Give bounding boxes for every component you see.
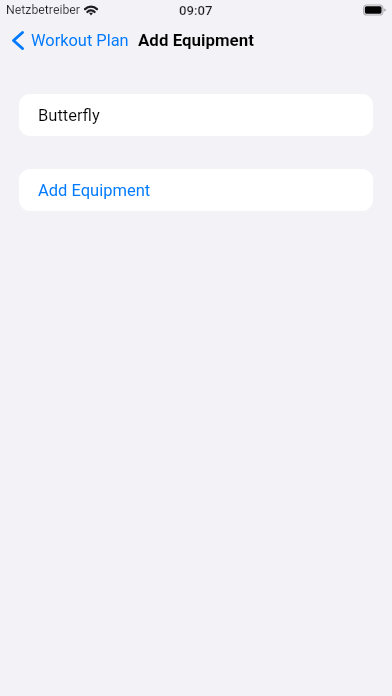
button[interactable]: Add Equipment <box>19 169 373 211</box>
staticText: 09:07 <box>179 3 213 18</box>
button[interactable]: Butterfly <box>19 94 373 136</box>
staticText: Workout Plan <box>31 31 129 50</box>
staticText: Butterfly <box>38 106 100 125</box>
staticText: Add Equipment <box>138 30 254 50</box>
staticText: Add Equipment <box>38 181 151 200</box>
button[interactable]: Back to Workout Plan <box>8 26 134 55</box>
staticText: Netzbetreiber <box>6 3 81 17</box>
